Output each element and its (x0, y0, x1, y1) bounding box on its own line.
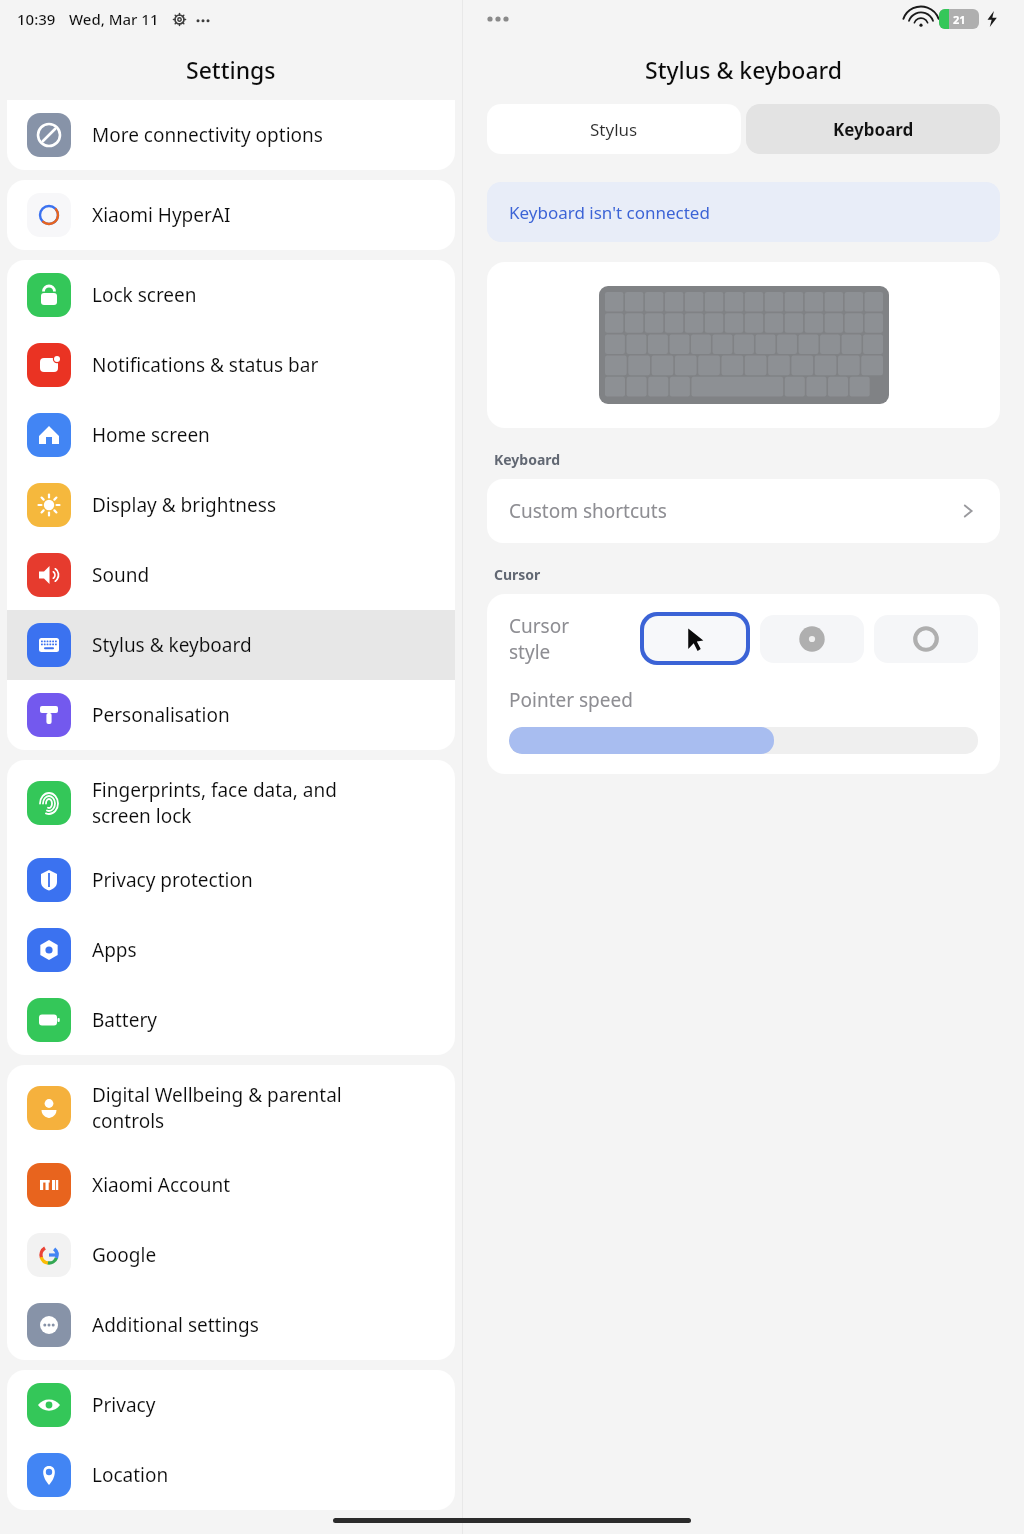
button[interactable]: Keyboard isn't connected (487, 182, 1000, 242)
staticText: Stylus (590, 118, 638, 141)
button[interactable]: Sound (7, 540, 455, 610)
staticText: Lock screen (92, 282, 197, 308)
button[interactable]: Privacy (7, 1370, 455, 1440)
staticText: More connectivity options (92, 122, 323, 148)
staticText: Location (92, 1462, 169, 1488)
staticText: Keyboard isn't connected (509, 201, 710, 224)
staticText: Stylus & keyboard (645, 54, 843, 85)
staticText: 10:39 (17, 9, 56, 29)
staticText: Xiaomi HyperAI (92, 202, 231, 228)
staticText: Display & brightness (92, 492, 276, 518)
button[interactable] (509, 727, 978, 754)
button[interactable]: Xiaomi Account (7, 1150, 455, 1220)
staticText: Sound (92, 562, 150, 588)
button[interactable]: Personalisation (7, 680, 455, 750)
staticText: Apps (92, 937, 137, 963)
staticText: Keyboard (494, 450, 561, 469)
staticText: Notifications & status bar (92, 352, 319, 378)
button[interactable]: Google (7, 1220, 455, 1290)
button[interactable]: Ring cursor (874, 615, 978, 663)
button[interactable]: Location (7, 1440, 455, 1510)
staticText: Google (92, 1242, 157, 1268)
button[interactable]: Digital Wellbeing & parental controls (7, 1065, 455, 1150)
button[interactable]: Battery (7, 985, 455, 1055)
staticText: Privacy (92, 1392, 156, 1418)
button[interactable]: Keyboard (746, 104, 1000, 154)
button[interactable]: Dot cursor (760, 615, 864, 663)
button[interactable]: Lock screen (7, 260, 455, 330)
button[interactable]: Apps (7, 915, 455, 985)
button[interactable]: Stylus (487, 104, 741, 154)
staticText: Battery (92, 1007, 157, 1033)
staticText: Wed, Mar 11 (69, 9, 159, 29)
staticText: Keyboard (833, 118, 914, 141)
button[interactable]: Xiaomi HyperAI (7, 180, 455, 250)
staticText: Privacy protection (92, 867, 253, 893)
staticText: Xiaomi Account (92, 1172, 231, 1198)
button[interactable]: Stylus & keyboard (7, 610, 455, 680)
button[interactable]: Home screen (7, 400, 455, 470)
button[interactable]: Privacy protection (7, 845, 455, 915)
staticText: 21 (953, 12, 966, 27)
button[interactable]: Notifications & status bar (7, 330, 455, 400)
button[interactable]: Display & brightness (7, 470, 455, 540)
button[interactable]: Custom shortcuts (487, 479, 1000, 543)
staticText: Home screen (92, 422, 210, 448)
staticText: Settings (186, 54, 276, 85)
staticText: Cursor (494, 565, 541, 584)
staticText: Additional settings (92, 1312, 259, 1338)
staticText: Personalisation (92, 702, 230, 728)
staticText: Digital Wellbeing & parental controls (92, 1082, 342, 1133)
button[interactable]: Fingerprints, face data, and screen lock (7, 760, 455, 845)
staticText: Cursor style (509, 613, 570, 664)
staticText: Pointer speed (509, 687, 633, 713)
staticText: Stylus & keyboard (92, 632, 252, 658)
button[interactable]: Additional settings (7, 1290, 455, 1360)
button[interactable]: More connectivity options (7, 100, 455, 170)
staticText: Custom shortcuts (509, 498, 667, 524)
button[interactable]: Arrow cursor (644, 616, 746, 661)
staticText: Fingerprints, face data, and screen lock (92, 777, 337, 828)
